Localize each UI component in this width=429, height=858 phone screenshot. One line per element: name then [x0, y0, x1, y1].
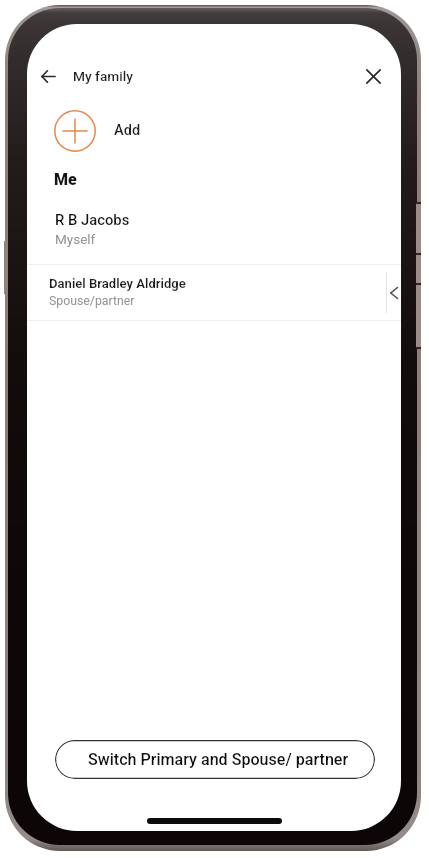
button[interactable]: Switch Primary and Spouse/ partner [55, 740, 375, 779]
staticText: Me [54, 170, 77, 189]
staticText: R B Jacobs [55, 211, 130, 228]
button[interactable]: R B Jacobs [27, 204, 401, 268]
button[interactable]: Expand actions [387, 264, 401, 321]
staticText: Switch Primary and Spouse/ partner [88, 750, 349, 769]
button[interactable]: Close [351, 54, 395, 98]
staticText: Daniel Bradley Aldridge [49, 276, 186, 291]
button[interactable]: Back [27, 54, 70, 98]
staticText: Myself [55, 231, 96, 247]
button[interactable]: Daniel Bradley Aldridge [27, 264, 401, 321]
staticText: Add [114, 121, 141, 138]
staticText: My family [73, 68, 133, 84]
button[interactable]: Add [27, 101, 401, 161]
staticText: Spouse/partner [49, 294, 135, 308]
